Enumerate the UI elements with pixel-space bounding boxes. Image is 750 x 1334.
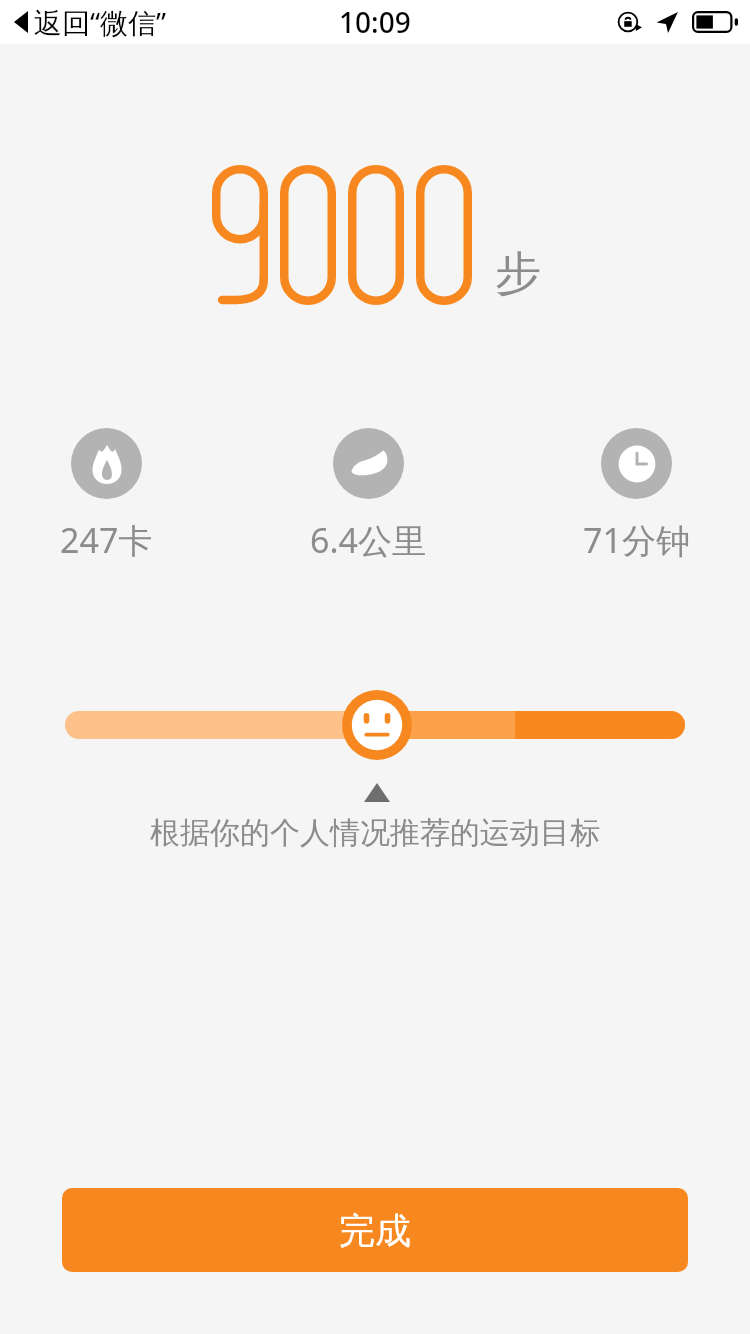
staticText: 10:09 <box>339 3 411 41</box>
staticText: 71分钟 <box>583 517 690 563</box>
button[interactable]: Distance <box>310 428 427 563</box>
button[interactable]: Calories <box>60 428 153 563</box>
button[interactable]: Step goal slider <box>0 687 750 763</box>
button[interactable]: Duration <box>583 428 690 563</box>
button[interactable]: 返回“微信” <box>10 3 171 41</box>
staticText: 根据你的个人情况推荐的运动目标 <box>0 814 750 852</box>
staticText: 247卡 <box>60 517 153 563</box>
staticText: 返回“微信” <box>34 3 167 41</box>
staticText: 完成 <box>339 1208 411 1253</box>
staticText: 步 <box>495 245 541 303</box>
button[interactable]: 完成 <box>62 1188 688 1272</box>
staticText: 6.4公里 <box>310 517 427 563</box>
